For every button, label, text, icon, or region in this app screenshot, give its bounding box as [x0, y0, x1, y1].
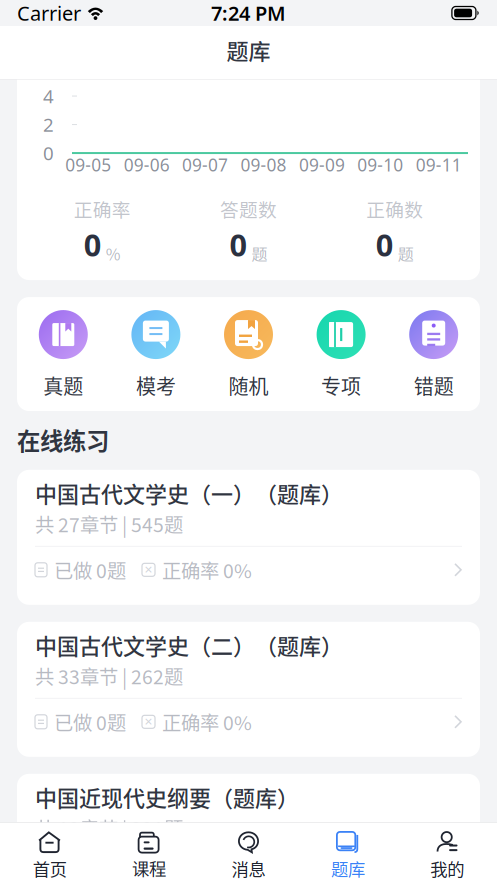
- staticText: 课程: [132, 855, 166, 880]
- staticText: 题: [251, 242, 267, 265]
- button[interactable]: 真题: [17, 310, 110, 400]
- staticText: 专项: [321, 371, 361, 400]
- staticText: 共 27章节 | 545题: [35, 510, 183, 538]
- button[interactable]: 随机: [202, 310, 295, 400]
- staticText: 答题数: [220, 195, 277, 222]
- staticText: 首页: [33, 856, 67, 881]
- staticText: 7:24 PM: [211, 0, 286, 26]
- staticText: 2: [43, 112, 54, 137]
- staticText: 正确数: [366, 195, 423, 222]
- staticText: 0: [229, 224, 247, 265]
- staticText: 随机: [228, 371, 268, 400]
- button[interactable]: 模考: [110, 310, 202, 400]
- staticText: 0: [84, 224, 102, 265]
- staticText: ✕: [144, 868, 153, 880]
- staticText: 0: [376, 224, 394, 265]
- staticText: 共 12章节 | 321题: [35, 814, 183, 842]
- button[interactable]: 我的: [398, 831, 497, 881]
- staticText: 已做 0题: [54, 708, 126, 736]
- button[interactable]: 错题: [387, 310, 480, 400]
- staticText: 正确率 0%: [162, 556, 252, 584]
- staticText: ✕: [144, 564, 153, 576]
- staticText: 正确率 0%: [162, 708, 252, 736]
- button[interactable]: 题库: [298, 831, 398, 881]
- staticText: 09-11: [416, 153, 462, 176]
- staticText: 题库: [226, 34, 270, 66]
- staticText: Carrier: [17, 0, 81, 26]
- button[interactable]: 消息: [199, 831, 298, 881]
- button[interactable]: 专项: [295, 310, 387, 400]
- button[interactable]: 中国近现代史纲要（题库）: [17, 774, 480, 883]
- staticText: 中国近现代史纲要（题库）: [35, 781, 299, 813]
- staticText: 已做 0题: [54, 556, 126, 584]
- staticText: ✕: [144, 716, 153, 728]
- staticText: %: [106, 242, 121, 265]
- staticText: 真题: [43, 371, 83, 400]
- button[interactable]: 课程: [99, 831, 199, 880]
- staticText: 正确率 0%: [162, 860, 252, 883]
- button[interactable]: 中国古代文学史（一）（题库）: [17, 470, 480, 605]
- staticText: 4: [43, 84, 54, 108]
- staticText: 09-06: [124, 153, 170, 176]
- staticText: 中国古代文学史（二）（题库）: [35, 629, 343, 661]
- staticText: 正确率: [74, 195, 131, 222]
- staticText: 09-09: [299, 153, 345, 176]
- staticText: 中国古代文学史（一）（题库）: [35, 477, 343, 509]
- staticText: 0: [43, 141, 54, 165]
- staticText: 题: [398, 242, 414, 265]
- staticText: 错题: [414, 371, 454, 400]
- staticText: 消息: [231, 856, 265, 881]
- staticText: 09-10: [357, 153, 403, 176]
- staticText: 09-08: [240, 153, 286, 176]
- staticText: 共 33章节 | 262题: [35, 662, 183, 690]
- staticText: 09-05: [65, 153, 111, 176]
- staticText: 模考: [136, 371, 176, 400]
- button[interactable]: 首页: [0, 831, 99, 881]
- button[interactable]: 中国古代文学史（二）（题库）: [17, 622, 480, 757]
- staticText: 已做 0题: [54, 860, 126, 883]
- staticText: 我的: [430, 856, 464, 881]
- staticText: 在线练习: [17, 423, 109, 457]
- staticText: 09-07: [182, 153, 228, 176]
- staticText: 题库: [331, 856, 365, 881]
